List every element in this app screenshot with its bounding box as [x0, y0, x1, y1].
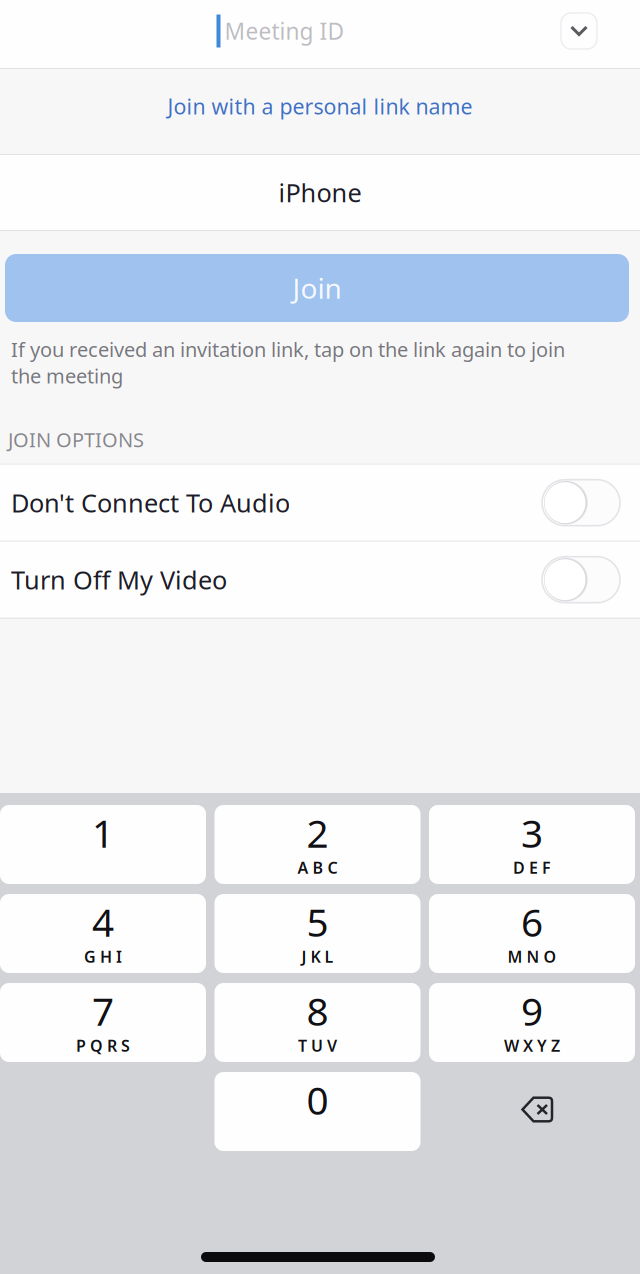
staticText: G H I	[84, 946, 122, 967]
button[interactable]: 6	[429, 894, 635, 973]
staticText: 2	[306, 807, 328, 858]
staticText: J K L	[301, 946, 333, 967]
staticText: 6	[521, 896, 543, 947]
staticText: If you received an invitation link, tap …	[11, 336, 565, 389]
button[interactable]: 0	[214, 1072, 420, 1151]
button[interactable]: 4	[0, 894, 206, 973]
staticText: 9	[521, 985, 543, 1036]
staticText: JOIN OPTIONS	[8, 426, 144, 453]
button[interactable]: iPhone	[0, 155, 640, 230]
button[interactable]: Delete	[429, 1072, 635, 1151]
staticText: 7	[92, 985, 114, 1036]
staticText: 5	[306, 896, 328, 947]
staticText: M N O	[507, 946, 556, 967]
button[interactable]: Turn Off My Video	[0, 542, 640, 618]
staticText: Turn Off My Video	[11, 563, 227, 596]
button[interactable]: 1	[0, 805, 206, 884]
button[interactable]: 2	[214, 805, 420, 884]
button[interactable]: Meeting history	[561, 13, 597, 49]
staticText: 0	[306, 1074, 328, 1125]
button[interactable]: 3	[429, 805, 635, 884]
staticText: D E F	[513, 857, 551, 878]
staticText: Join with a personal link name	[167, 92, 472, 120]
staticText: 1	[92, 807, 114, 858]
button[interactable]: Join with a personal link name	[0, 69, 640, 154]
staticText: 3	[521, 807, 543, 858]
staticText: Join	[292, 269, 341, 307]
staticText: Meeting ID	[224, 16, 344, 46]
staticText: T U V	[298, 1035, 337, 1056]
button[interactable]: Don't Connect To Audio	[0, 465, 640, 541]
button[interactable]: 9	[429, 983, 635, 1062]
staticText: P Q R S	[76, 1035, 130, 1056]
staticText: iPhone	[278, 176, 361, 209]
staticText: A B C	[297, 857, 337, 878]
button[interactable]: 5	[214, 894, 420, 973]
staticText: Don't Connect To Audio	[11, 486, 290, 519]
button[interactable]: 7	[0, 983, 206, 1062]
button[interactable]: 8	[214, 983, 420, 1062]
staticText: 8	[306, 985, 328, 1036]
staticText: 4	[92, 896, 114, 947]
staticText: W X Y Z	[504, 1035, 560, 1056]
button[interactable]: Meeting ID	[0, 13, 561, 49]
button[interactable]: Join	[5, 254, 629, 322]
